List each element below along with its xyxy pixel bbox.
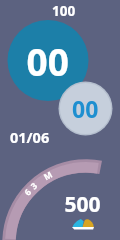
button[interactable]: Watch face with time, date and step comp… [0, 0, 120, 240]
